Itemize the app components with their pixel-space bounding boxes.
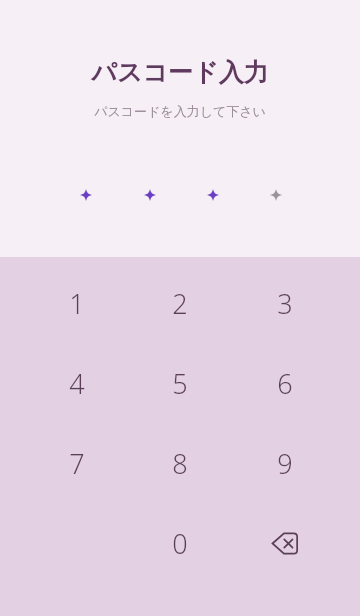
staticText: 3: [277, 285, 293, 322]
staticText: 5: [172, 365, 188, 402]
button[interactable]: 3: [242, 266, 328, 340]
staticText: 0: [172, 525, 188, 562]
button[interactable]: 8: [137, 426, 223, 500]
button[interactable]: 2: [137, 266, 223, 340]
staticText: 8: [172, 445, 188, 482]
button[interactable]: Backspace: [242, 506, 328, 580]
staticText: 6: [277, 365, 293, 402]
button[interactable]: 0: [137, 506, 223, 580]
staticText: 4: [69, 365, 85, 402]
button[interactable]: 4: [34, 346, 120, 420]
button[interactable]: 5: [137, 346, 223, 420]
staticText: パスコードを入力して下さい: [94, 103, 266, 119]
staticText: パスコード入力: [91, 57, 269, 88]
staticText: 1: [69, 285, 85, 322]
button[interactable]: 1: [34, 266, 120, 340]
button[interactable]: 9: [242, 426, 328, 500]
staticText: 9: [277, 445, 293, 482]
staticText: 2: [172, 285, 188, 322]
staticText: 7: [69, 445, 85, 482]
button[interactable]: 6: [242, 346, 328, 420]
button[interactable]: 7: [34, 426, 120, 500]
